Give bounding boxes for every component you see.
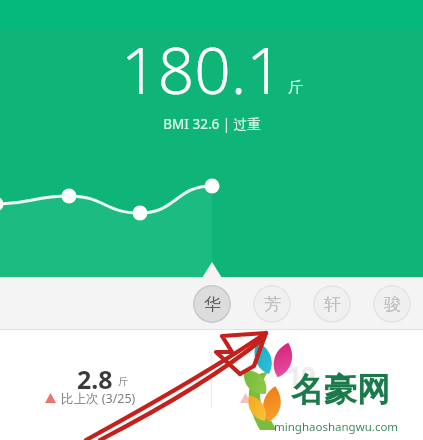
button[interactable]: 华 — [193, 285, 231, 323]
staticText: 斤 — [288, 78, 303, 97]
staticText: 19 — [287, 358, 316, 392]
staticText: 比上次 (3/25) — [61, 390, 136, 407]
staticText: 轩 — [324, 294, 341, 315]
staticText: 华 — [204, 294, 221, 315]
staticText: minghaoshangwu.com — [274, 419, 399, 435]
button[interactable]: 2.8 — [0, 330, 211, 440]
staticText: BMI 32.6 | 过重 — [163, 115, 261, 133]
button[interactable]: 芳 — [253, 285, 291, 323]
staticText: 名豪网 — [291, 369, 390, 411]
staticText: 2.8 — [77, 362, 113, 396]
staticText: 180.1 — [121, 26, 283, 113]
staticText: 芳 — [264, 294, 281, 315]
button[interactable]: 骏 — [373, 285, 411, 323]
staticText: 骏 — [384, 294, 401, 315]
button[interactable]: 轩 — [313, 285, 351, 323]
button[interactable]: 19 — [212, 330, 423, 440]
staticText: 斤 — [118, 375, 128, 388]
